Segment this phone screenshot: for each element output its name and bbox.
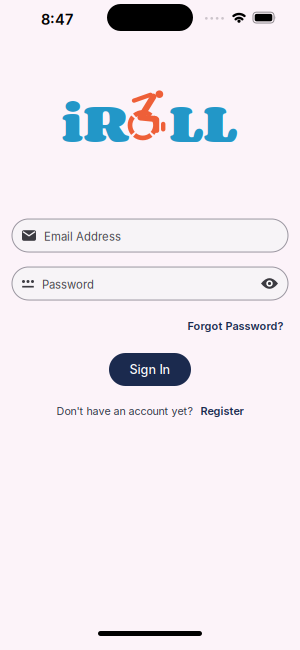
staticText: Forgot Password? — [187, 319, 283, 333]
staticText: Sign In — [129, 362, 170, 377]
staticText: Password — [42, 278, 94, 292]
staticText: Email Address — [44, 230, 121, 244]
staticText: Don't have an account yet? — [56, 404, 192, 417]
staticText: Register — [200, 404, 243, 418]
staticText: 8:47 — [41, 11, 73, 28]
staticText: iR — [61, 79, 128, 163]
staticText: LL — [169, 79, 237, 163]
